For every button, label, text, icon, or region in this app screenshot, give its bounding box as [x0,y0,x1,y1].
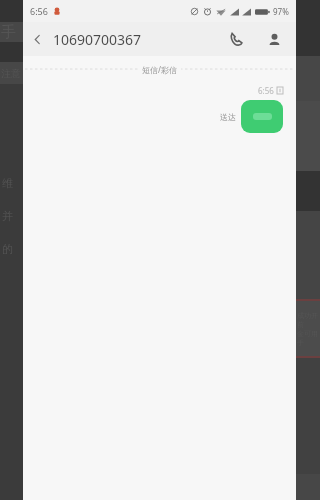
staticText: 97% [273,6,289,17]
button[interactable]: Back [23,25,51,53]
staticText: 维 [2,176,13,190]
staticText: 10690700367 [53,30,142,49]
staticText: 并 [2,209,13,223]
staticText: 短信/彩信 [142,64,177,75]
button[interactable]: Contact details [260,25,288,53]
staticText: 6:56 [30,5,48,17]
staticText: 的 [2,242,13,256]
staticText: 6:56 [258,85,274,96]
button[interactable] [241,100,283,133]
staticText: 送达 [220,112,236,122]
staticText: 手 [1,23,16,42]
button[interactable]: Call [222,25,250,53]
